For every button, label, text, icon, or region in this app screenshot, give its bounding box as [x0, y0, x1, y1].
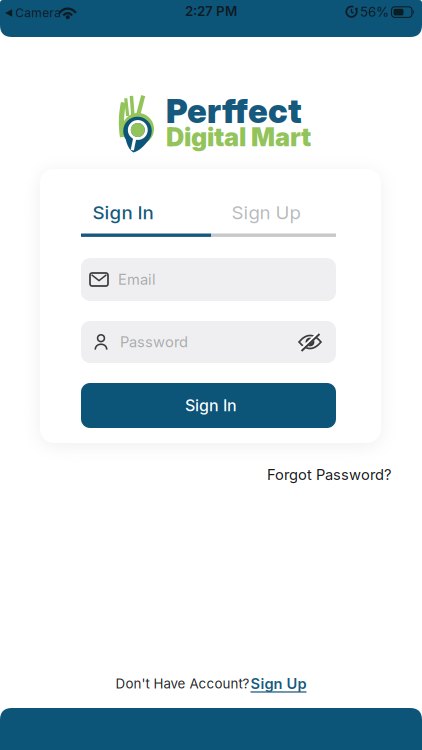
button[interactable]: Sign Up — [211, 199, 336, 243]
staticText: Email — [118, 271, 156, 288]
button[interactable]: Back to Camera — [5, 4, 61, 22]
staticText: Sign In — [92, 201, 153, 223]
staticText: Sign Up — [231, 201, 300, 223]
button[interactable]: Forgot Password? — [267, 466, 391, 483]
staticText: Sign In — [185, 396, 237, 415]
staticText: Perffect — [166, 91, 302, 131]
button[interactable]: Password — [81, 321, 336, 363]
button[interactable]: Show password — [297, 332, 323, 352]
staticText: Forgot Password? — [267, 466, 391, 483]
button[interactable]: Sign In — [81, 383, 336, 428]
staticText: Sign Up — [250, 675, 306, 692]
staticText: Don't Have Account? — [115, 676, 249, 691]
staticText: Digital Mart — [166, 122, 311, 152]
button[interactable]: Sign Up — [250, 675, 306, 692]
button[interactable]: Sign In — [81, 199, 211, 243]
staticText: 56% — [360, 4, 389, 20]
staticText: Password — [120, 333, 188, 351]
staticText: 2:27 PM — [185, 3, 237, 19]
staticText: Camera — [15, 6, 61, 20]
button[interactable]: Email — [81, 258, 336, 301]
